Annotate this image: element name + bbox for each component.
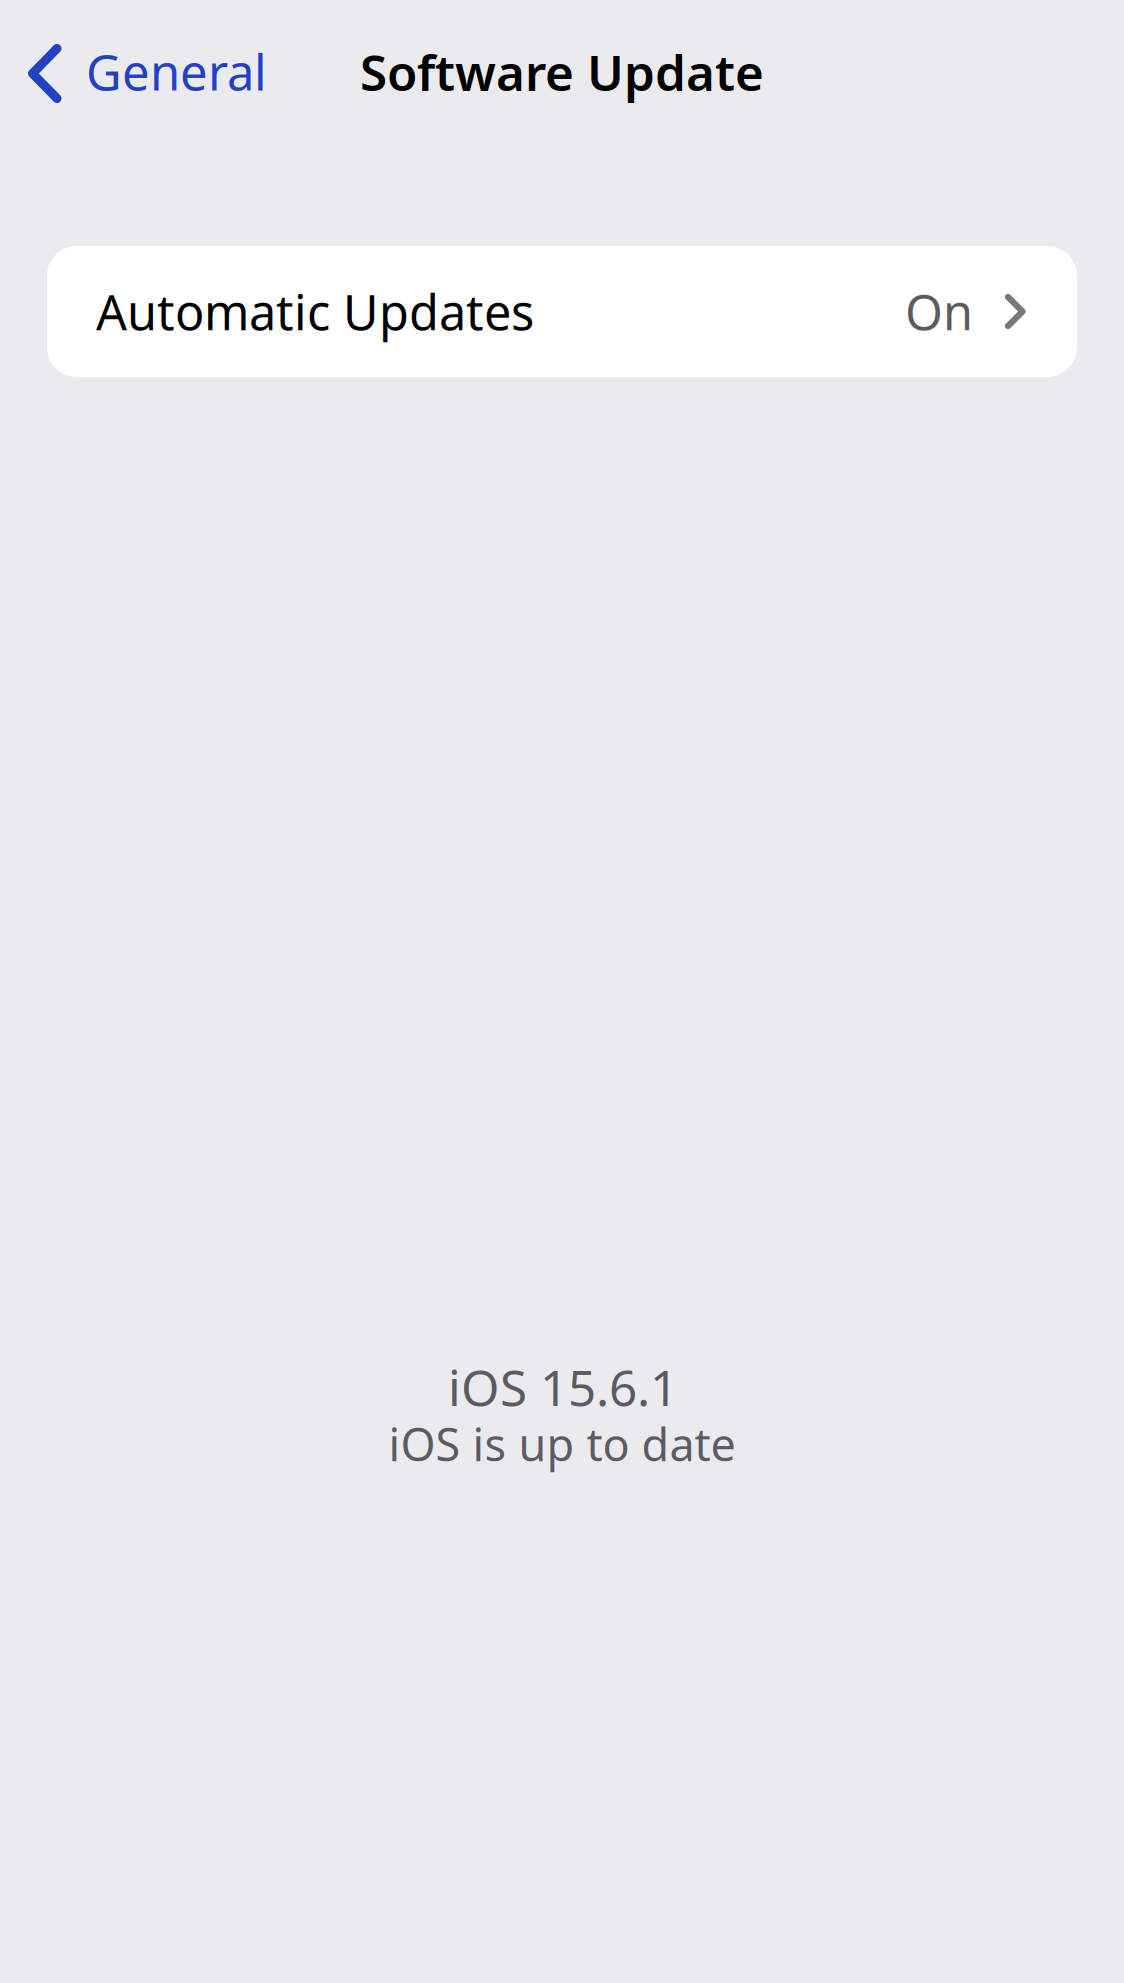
- staticText: iOS is up to date: [388, 1414, 735, 1474]
- staticText: Software Update: [360, 39, 764, 104]
- button[interactable]: Back to General: [2, 17, 291, 126]
- staticText: Automatic Updates: [96, 279, 534, 344]
- staticText: iOS 15.6.1: [448, 1354, 678, 1419]
- staticText: General: [86, 39, 267, 104]
- button[interactable]: Automatic Updates: [47, 246, 1077, 377]
- staticText: On: [905, 279, 973, 344]
